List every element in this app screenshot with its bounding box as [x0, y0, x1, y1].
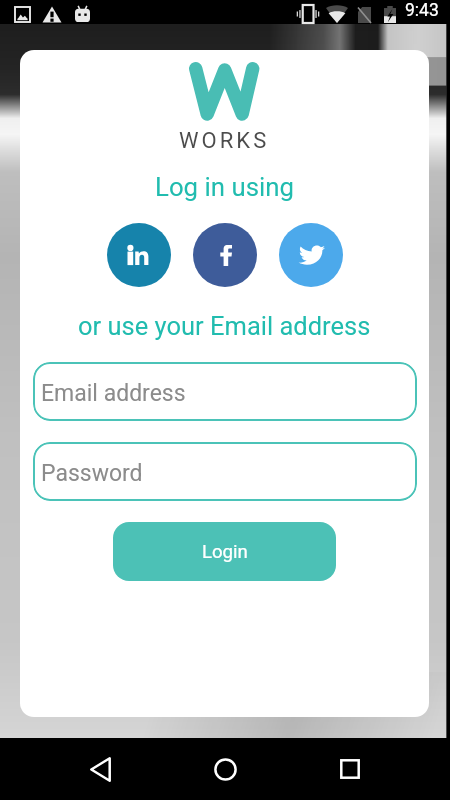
button[interactable]: Recent apps	[328, 747, 372, 791]
staticText: Password	[41, 460, 143, 487]
button[interactable]: Sign in with LinkedIn	[107, 223, 171, 287]
button[interactable]: Email address	[33, 362, 417, 421]
staticText: WORKS	[179, 128, 270, 154]
button[interactable]: Home	[203, 747, 247, 791]
button[interactable]: Back	[78, 747, 122, 791]
staticText: or use your Email address	[78, 311, 371, 341]
button[interactable]: Sign in with Facebook	[193, 223, 257, 287]
staticText: Email address	[41, 380, 186, 407]
button[interactable]: Login	[113, 522, 336, 581]
staticText: 9:43	[405, 0, 439, 21]
staticText: Log in using	[155, 172, 294, 202]
staticText: Login	[202, 541, 248, 563]
button[interactable]: Password	[33, 442, 417, 501]
button[interactable]: Sign in with Twitter	[279, 223, 343, 287]
